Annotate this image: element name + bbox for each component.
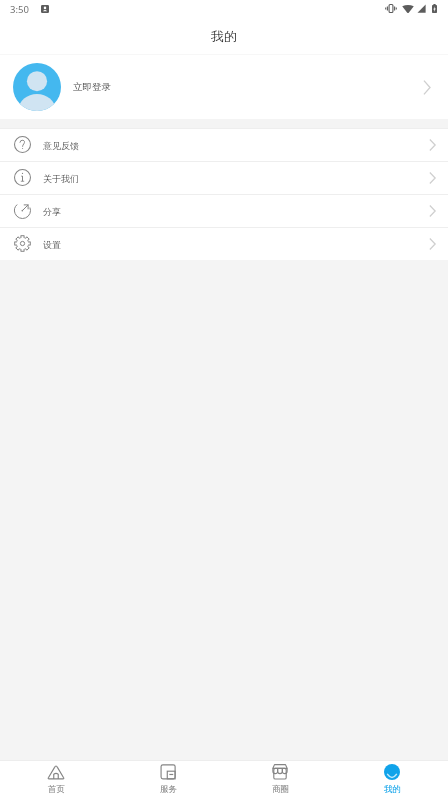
staticText: 意见反馈 bbox=[43, 140, 79, 151]
staticText: 立即登录 bbox=[73, 81, 111, 93]
staticText: 设置 bbox=[43, 239, 61, 250]
button[interactable]: Services bbox=[112, 761, 224, 798]
button[interactable]: Shops bbox=[224, 761, 336, 798]
staticText: 3:50 bbox=[10, 3, 29, 16]
button[interactable]: Feedback bbox=[0, 129, 448, 161]
button[interactable]: Home bbox=[0, 761, 112, 798]
staticText: 分享 bbox=[43, 206, 61, 217]
button[interactable]: About us bbox=[0, 162, 448, 194]
button[interactable]: Mine bbox=[336, 761, 448, 798]
button[interactable]: Share bbox=[0, 195, 448, 227]
button[interactable]: Settings bbox=[0, 228, 448, 260]
staticText: 商圈 bbox=[272, 784, 289, 795]
staticText: 服务 bbox=[160, 784, 177, 795]
staticText: 关于我们 bbox=[43, 173, 79, 184]
staticText: 我的 bbox=[384, 784, 401, 795]
staticText: 我的 bbox=[211, 28, 237, 44]
staticText: 首页 bbox=[48, 784, 65, 795]
button[interactable]: 立即登录 bbox=[0, 55, 448, 119]
